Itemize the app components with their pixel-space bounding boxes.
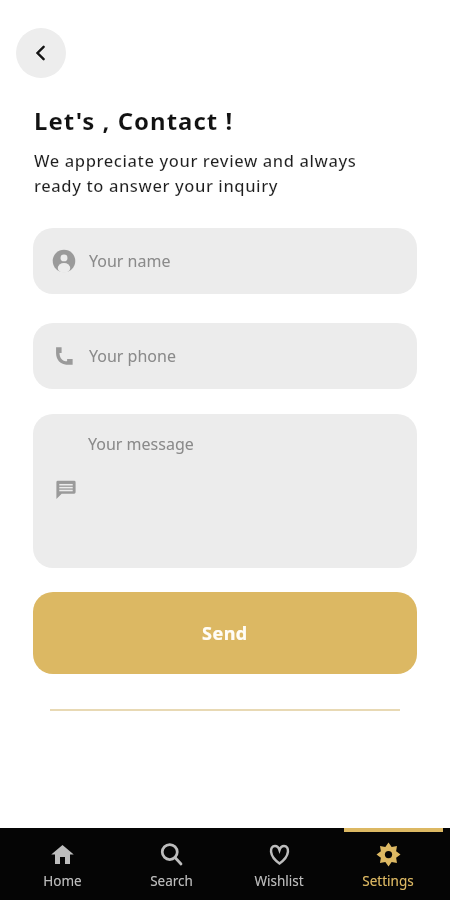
staticText: Home [43, 872, 82, 890]
staticText: Your phone [89, 345, 176, 367]
staticText: Your message [88, 433, 194, 455]
staticText: We appreciate your review and always rea… [34, 149, 388, 196]
staticText: Your name [89, 250, 171, 272]
button[interactable]: Send [33, 592, 417, 674]
staticText: Search [150, 872, 193, 890]
button[interactable]: Settings [342, 832, 434, 900]
button[interactable]: Your name [33, 228, 417, 294]
button[interactable]: Your message [33, 414, 417, 568]
button[interactable]: Home [16, 832, 108, 900]
button[interactable]: Search [125, 832, 217, 900]
staticText: Let's , Contact ! [34, 104, 234, 137]
button[interactable]: Back [16, 28, 66, 78]
staticText: Wishlist [254, 872, 304, 890]
button[interactable]: Wishlist [233, 832, 325, 900]
staticText: Send [202, 621, 248, 646]
button[interactable]: Your phone [33, 323, 417, 389]
staticText: Settings [362, 872, 414, 890]
